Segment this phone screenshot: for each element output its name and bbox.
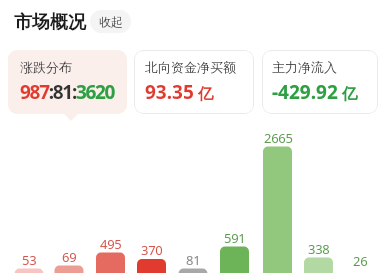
staticText: 69 <box>62 248 77 266</box>
staticText: 收起 <box>99 14 123 29</box>
staticText: 987:81:3620 <box>20 79 115 105</box>
staticText: 338 <box>308 240 330 258</box>
button[interactable]: 收起 <box>90 10 131 33</box>
staticText: 2665 <box>264 129 293 147</box>
staticText: 81 <box>186 251 201 269</box>
staticText: 495 <box>100 235 122 253</box>
staticText: 北向资金净买额 <box>145 59 236 75</box>
staticText: 591 <box>224 229 246 247</box>
button[interactable]: 北向资金净买额 <box>134 50 254 114</box>
staticText: 93.35 亿 <box>145 79 214 105</box>
staticText: 涨跌分布 <box>20 59 72 75</box>
staticText: 370 <box>141 241 163 259</box>
staticText: 26 <box>353 252 368 270</box>
staticText: -429.92 亿 <box>272 79 358 105</box>
staticText: 市场概况 <box>14 11 86 34</box>
staticText: 53 <box>22 251 37 269</box>
button[interactable]: 主力净流入 <box>262 50 378 114</box>
button[interactable]: 涨跌分布 <box>8 50 127 114</box>
staticText: 主力净流入 <box>272 59 337 75</box>
